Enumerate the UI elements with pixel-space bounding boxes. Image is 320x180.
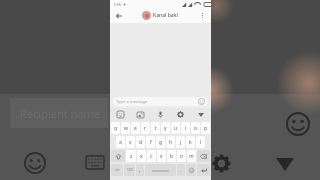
button[interactable]: p [201, 122, 210, 134]
button[interactable]: Emoji [186, 164, 196, 176]
staticText: t [155, 125, 157, 132]
button[interactable]: i [181, 122, 190, 134]
button[interactable]: Type a message [113, 97, 208, 106]
button[interactable]: a [116, 136, 125, 148]
button[interactable]: j [176, 136, 185, 148]
button[interactable]: f [146, 136, 155, 148]
staticText: j [180, 139, 182, 146]
staticText: z [130, 153, 133, 160]
button[interactable]: y [161, 122, 170, 134]
button[interactable]: k [186, 136, 195, 148]
button[interactable]: z [126, 150, 136, 162]
staticText: p [204, 125, 208, 132]
button[interactable]: t [151, 122, 160, 134]
button[interactable]: r [141, 122, 150, 134]
staticText: c [150, 153, 153, 160]
staticText: 1:36 [113, 2, 121, 7]
button[interactable]: More options [197, 10, 208, 21]
staticText: Type a message [116, 99, 148, 105]
button[interactable]: Stickers [115, 109, 126, 120]
button[interactable]: l [196, 136, 205, 148]
staticText: b [170, 153, 174, 160]
staticText: l [200, 139, 202, 146]
button[interactable]: w [121, 122, 130, 134]
staticText: e [134, 125, 137, 132]
button[interactable]: s [126, 136, 135, 148]
button[interactable]: g [156, 136, 165, 148]
staticText: y [164, 125, 167, 132]
button[interactable]: q [111, 122, 120, 134]
button[interactable]: x [137, 150, 146, 162]
button[interactable]: e [131, 122, 140, 134]
staticText: Kanal bakl [153, 12, 178, 19]
button[interactable]: Hide keyboard [195, 109, 206, 120]
staticText: =\< [115, 168, 120, 172]
button[interactable]: Kanal bakl [142, 11, 178, 20]
staticText: n [180, 153, 184, 160]
staticText: s [129, 139, 132, 146]
staticText: u [174, 125, 178, 132]
staticText: , [139, 167, 141, 173]
staticText: r [144, 125, 147, 132]
button[interactable]: Images [135, 109, 146, 120]
button[interactable]: n [177, 150, 186, 162]
staticText: h [169, 139, 173, 146]
button[interactable]: Comma [136, 164, 144, 176]
button[interactable]: Numbers [124, 164, 135, 176]
button[interactable]: o [191, 122, 200, 134]
button[interactable]: Symbols [111, 164, 123, 176]
button[interactable]: Period [177, 164, 185, 176]
button[interactable]: b [167, 150, 176, 162]
button[interactable]: d [136, 136, 145, 148]
staticText: Recipient name [20, 106, 101, 121]
staticText: i [185, 125, 187, 132]
staticText: x [140, 153, 143, 160]
button[interactable]: Voice input [155, 109, 166, 120]
staticText: . [180, 167, 182, 173]
staticText: g [159, 139, 163, 146]
staticText: f [150, 139, 152, 146]
button[interactable]: Back [113, 10, 124, 21]
button[interactable]: Keyboard settings [175, 109, 186, 120]
staticText: d [139, 139, 143, 146]
button[interactable]: m [187, 150, 196, 162]
button[interactable]: u [171, 122, 180, 134]
staticText: a [119, 139, 122, 146]
staticText: o [194, 125, 198, 132]
staticText: v [160, 153, 163, 160]
staticText: q [114, 125, 118, 132]
button[interactable]: Space [145, 164, 176, 176]
staticText: 123 [127, 168, 133, 172]
button[interactable]: c [147, 150, 156, 162]
button[interactable]: h [166, 136, 175, 148]
staticText: w [124, 125, 128, 132]
button[interactable]: Enter [197, 164, 210, 176]
button[interactable]: Shift [111, 150, 125, 162]
button[interactable]: v [157, 150, 166, 162]
staticText: k [189, 139, 192, 146]
button[interactable]: Backspace [197, 150, 210, 162]
staticText: m [189, 153, 194, 160]
